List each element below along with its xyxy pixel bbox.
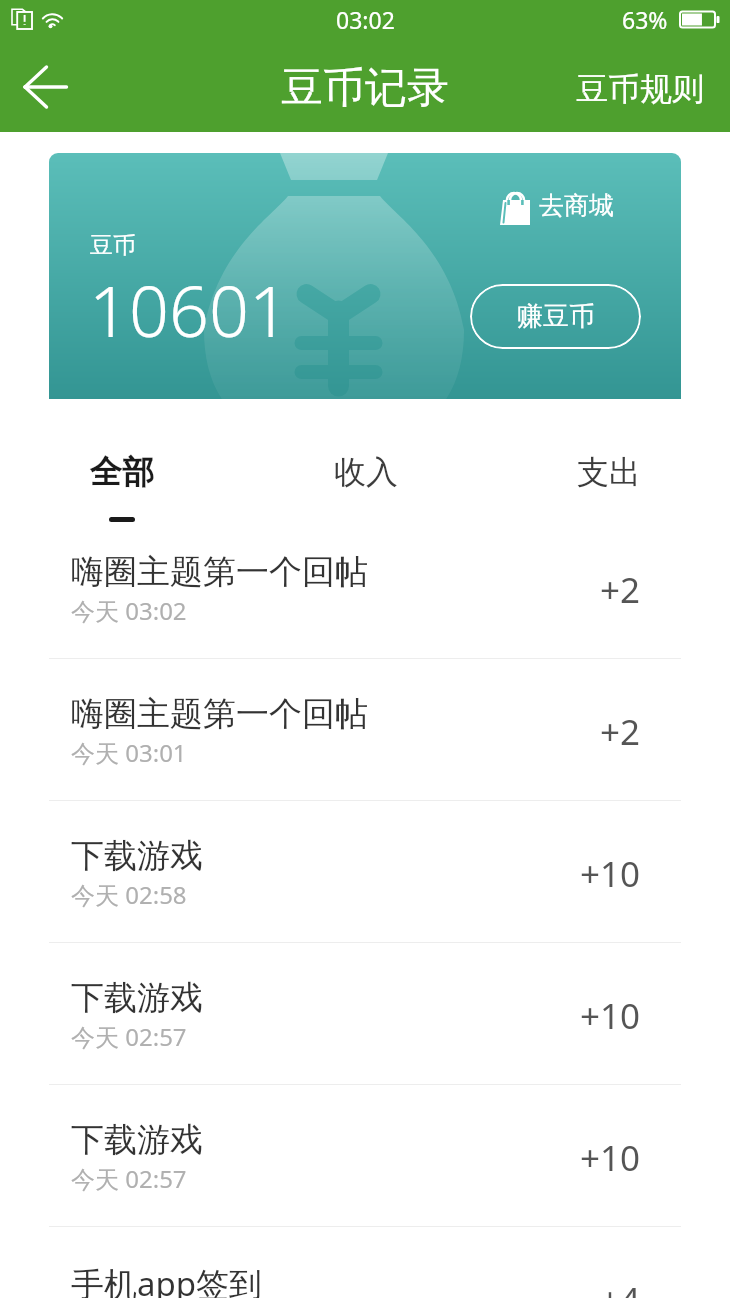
staticText: +4 [600, 1276, 641, 1298]
staticText: 下载游戏 [71, 835, 203, 877]
button[interactable]: 下载游戏 [0, 1085, 730, 1227]
staticText: 支出 [577, 452, 641, 492]
staticText: 03:02 [336, 4, 395, 35]
staticText: 今天 03:01 [71, 736, 187, 769]
staticText: +2 [600, 708, 641, 756]
staticText: 手机app签到 [71, 1261, 263, 1298]
staticText: +10 [580, 850, 641, 898]
button[interactable]: 支出 [487, 452, 730, 532]
button[interactable]: 下载游戏 [0, 801, 730, 943]
staticText: 今天 02:57 [71, 1020, 187, 1053]
button[interactable]: 赚豆币 [470, 284, 641, 349]
button[interactable]: 手机app签到 [0, 1227, 730, 1298]
button[interactable]: 下载游戏 [0, 943, 730, 1085]
staticText: +2 [600, 566, 641, 614]
staticText: 嗨圈主题第一个回帖 [71, 693, 368, 735]
staticText: +10 [580, 992, 641, 1040]
button[interactable]: 嗨圈主题第一个回帖 [0, 517, 730, 659]
button[interactable]: 收入 [244, 452, 487, 532]
staticText: 全部 [90, 452, 154, 492]
staticText: 豆币记录 [281, 62, 449, 115]
button[interactable]: 豆币规则 [550, 46, 730, 132]
staticText: 10601 [89, 262, 289, 357]
staticText: 今天 02:58 [71, 878, 187, 911]
staticText: 63% [622, 4, 668, 35]
button[interactable]: 全部 [0, 452, 244, 532]
button[interactable]: 嗨圈主题第一个回帖 [0, 659, 730, 801]
staticText: 赚豆币 [517, 300, 595, 333]
staticText: 今天 02:57 [71, 1162, 187, 1195]
staticText: 下载游戏 [71, 977, 203, 1019]
button[interactable]: Back [0, 46, 90, 132]
staticText: 豆币规则 [576, 69, 704, 109]
staticText: 今天 03:02 [71, 594, 187, 627]
staticText: 收入 [334, 452, 398, 492]
staticText: 去商城 [539, 190, 614, 221]
staticText: +10 [580, 1134, 641, 1182]
button[interactable]: 去商城 [499, 189, 614, 221]
staticText: 下载游戏 [71, 1119, 203, 1161]
staticText: 嗨圈主题第一个回帖 [71, 551, 368, 593]
staticText: 豆币 [90, 231, 136, 260]
